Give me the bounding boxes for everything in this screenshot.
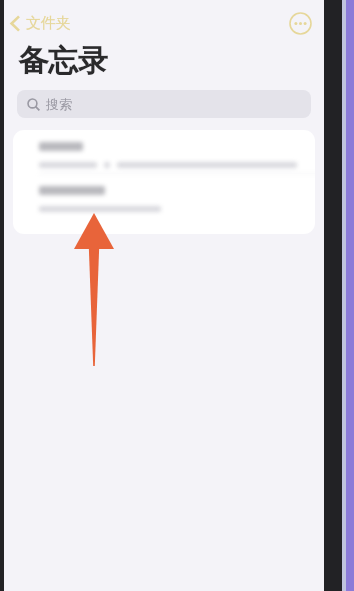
staticText: 备忘录	[18, 42, 108, 80]
button[interactable]	[13, 130, 315, 168]
button[interactable]: More options	[289, 12, 312, 35]
staticText: 搜索	[46, 96, 72, 112]
button[interactable]: 文件夹	[4, 14, 79, 33]
button[interactable]: 搜索	[17, 90, 311, 118]
button[interactable]	[13, 174, 315, 212]
staticText: 文件夹	[26, 14, 71, 33]
